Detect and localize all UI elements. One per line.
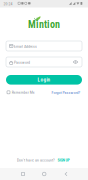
- staticText: Login: [37, 77, 50, 83]
- button[interactable]: Recents: [21, 172, 25, 176]
- staticText: 20:24: [3, 2, 12, 6]
- staticText: SIGN UP: [58, 158, 70, 162]
- staticText: Remember Me: [12, 90, 35, 95]
- staticText: Email Address: [14, 44, 37, 49]
- staticText: Password: [14, 60, 30, 65]
- button[interactable]: SIGN UP: [58, 158, 70, 162]
- button[interactable]: Home: [42, 172, 46, 176]
- button[interactable]: Forgot Password?: [51, 90, 80, 95]
- button[interactable]: Login: [6, 75, 82, 85]
- button[interactable]: Show password: [71, 58, 79, 66]
- staticText: Don't have an account?: [17, 158, 55, 162]
- staticText: Mintion: [28, 19, 60, 30]
- button[interactable]: Back: [65, 172, 67, 176]
- button[interactable]: Remember Me: [7, 90, 35, 95]
- staticText: Forgot Password?: [51, 90, 80, 95]
